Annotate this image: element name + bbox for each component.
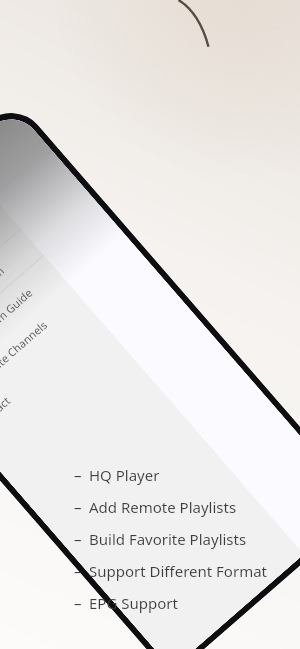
staticText: Build Favorite Playlists — [89, 529, 247, 549]
staticText: Support Different Format — [89, 561, 267, 581]
staticText: – — [74, 593, 82, 613]
staticText: EPG Program Guide — [0, 285, 36, 364]
staticText: – — [74, 561, 82, 581]
staticText: EPG Support — [89, 593, 178, 613]
button[interactable]: EPG Program Guide — [0, 256, 66, 396]
staticText: – — [74, 497, 82, 517]
button[interactable]: Favorite Channels — [0, 281, 89, 422]
staticText: – — [74, 465, 82, 485]
staticText: Add Remote Playlists — [89, 497, 237, 517]
staticText: Play Single Stream — [0, 263, 7, 337]
staticText: Contact — [0, 393, 13, 431]
button[interactable]: Contact — [0, 307, 110, 447]
button[interactable]: Playlist — [0, 203, 21, 344]
button[interactable]: Play Single Stream — [0, 229, 44, 370]
staticText: HQ Player — [89, 465, 160, 485]
staticText: – — [74, 529, 82, 549]
staticText: Favorite Channels — [0, 317, 50, 389]
